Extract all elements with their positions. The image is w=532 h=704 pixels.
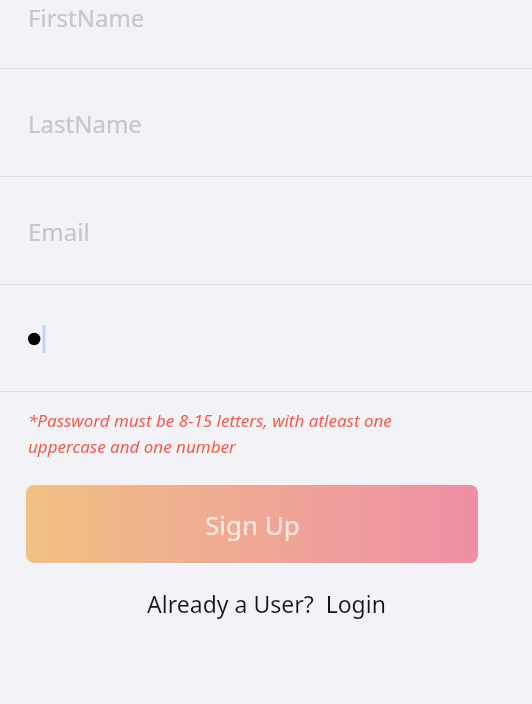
staticText: Already a User? Login (147, 588, 386, 619)
button[interactable]: Password field (0, 285, 532, 392)
staticText: Email (28, 215, 90, 248)
button[interactable]: Email (0, 177, 532, 285)
staticText: LastName (28, 107, 142, 140)
button[interactable]: Sign Up (26, 485, 478, 563)
button[interactable]: FirstName (0, 0, 532, 69)
button[interactable]: LastName (0, 69, 532, 177)
button[interactable]: Already a User? Login (135, 584, 398, 623)
staticText: FirstName (28, 1, 145, 34)
staticText: *Password must be 8-15 letters, with atl… (28, 409, 512, 458)
staticText: Sign Up (205, 507, 300, 542)
